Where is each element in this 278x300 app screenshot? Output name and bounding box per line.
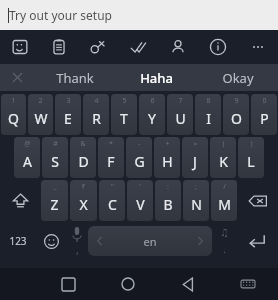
staticText: ♫ [220,227,229,239]
staticText: X [79,195,88,214]
staticText: Haha [140,69,173,87]
button[interactable]: Info [198,30,238,64]
button[interactable]: & [70,137,96,178]
button[interactable]: Backspace [237,180,278,221]
button[interactable]: Enter [236,223,278,259]
button[interactable]: 7 [167,94,193,135]
button[interactable]: ( [210,137,236,178]
staticText: 7 [178,96,183,106]
button[interactable]: Thank [34,64,116,91]
button[interactable]: Try out your setup [0,0,278,30]
staticText: 0 [262,96,267,106]
button[interactable]: : [155,180,181,221]
staticText: 4 [94,96,99,106]
button[interactable]: Sound [212,223,236,259]
button[interactable]: 8 [195,94,221,135]
button[interactable]: en [88,226,212,256]
staticText: V [136,195,145,214]
button[interactable]: 5 [111,94,137,135]
button[interactable]: Emoji [36,223,66,259]
staticText: = [193,139,198,149]
button[interactable]: ) [238,137,264,178]
staticText: + [165,139,170,149]
staticText: & [80,139,86,149]
button[interactable]: Haha [116,64,197,91]
staticText: F [107,152,115,171]
button[interactable]: @ [14,137,40,178]
staticText: . [223,241,226,256]
button[interactable]: ; [183,180,209,221]
staticText: / [223,182,226,192]
staticText: H [162,152,173,171]
staticText: D [78,152,89,171]
staticText: ) [250,139,253,149]
staticText: N [191,195,202,214]
staticText: Thank [56,69,94,87]
button[interactable]: 0 [251,94,277,135]
button[interactable]: Profile [158,30,198,64]
button[interactable]: # [42,137,68,178]
button[interactable]: Spell check [118,30,158,64]
button[interactable]: Shift [0,180,41,221]
staticText: - [138,139,141,149]
staticText: 8 [206,96,211,106]
button[interactable]: Clipboard [39,30,78,64]
button[interactable]: ₹ [70,180,97,221]
button[interactable]: Stickers [0,30,39,64]
staticText: ₹ [81,182,86,192]
button[interactable]: Close suggestions [0,64,34,91]
button[interactable]: Translate [78,30,118,64]
staticText: A [23,152,32,171]
staticText: M [218,195,231,214]
staticText: J [193,152,197,171]
staticText: Y [148,109,156,128]
staticText: en [143,234,157,249]
button[interactable]: - [126,137,152,178]
staticText: Q [8,109,19,128]
button[interactable]: 2 [28,94,53,135]
staticText: @ [24,139,31,149]
staticText: * [109,139,113,149]
button[interactable]: 9 [223,94,249,135]
staticText: Z [50,195,59,214]
staticText: C [108,195,117,214]
staticText: I [206,109,211,128]
button[interactable]: Okay [197,64,278,91]
button[interactable]: + [154,137,180,178]
button[interactable]: 1 [1,94,26,135]
staticText: K [219,152,228,171]
button[interactable]: ' [127,180,153,221]
staticText: _ [53,182,57,192]
button[interactable]: / [211,180,237,221]
staticText: , [76,242,79,257]
button[interactable]: Home [112,268,144,300]
staticText: S [51,152,59,171]
staticText: Try out your setup [9,7,112,23]
staticText: Okay [222,69,254,87]
staticText: P [260,109,269,128]
staticText: T [120,109,128,128]
button[interactable]: More options [238,30,278,64]
staticText: R [92,109,101,128]
staticText: ; [195,182,197,192]
button[interactable]: Recents [52,268,84,300]
button[interactable]: = [182,137,208,178]
button[interactable]: 123 [0,223,36,259]
button[interactable]: * [98,137,124,178]
button[interactable]: 6 [139,94,165,135]
button[interactable]: 4 [83,94,109,135]
staticText: ( [222,139,225,149]
staticText: U [175,109,186,128]
button[interactable]: _ [41,180,68,221]
button[interactable]: Back [172,268,204,300]
staticText: O [231,109,242,128]
staticText: ' [139,182,141,192]
button[interactable]: 3 [55,94,81,135]
staticText: 6 [150,96,155,106]
staticText: G [134,152,145,171]
button[interactable]: " [99,180,125,221]
staticText: 5 [122,96,127,106]
button[interactable]: Hide keyboard [232,268,264,300]
button[interactable]: Voice input [66,223,88,259]
staticText: # [53,139,58,149]
